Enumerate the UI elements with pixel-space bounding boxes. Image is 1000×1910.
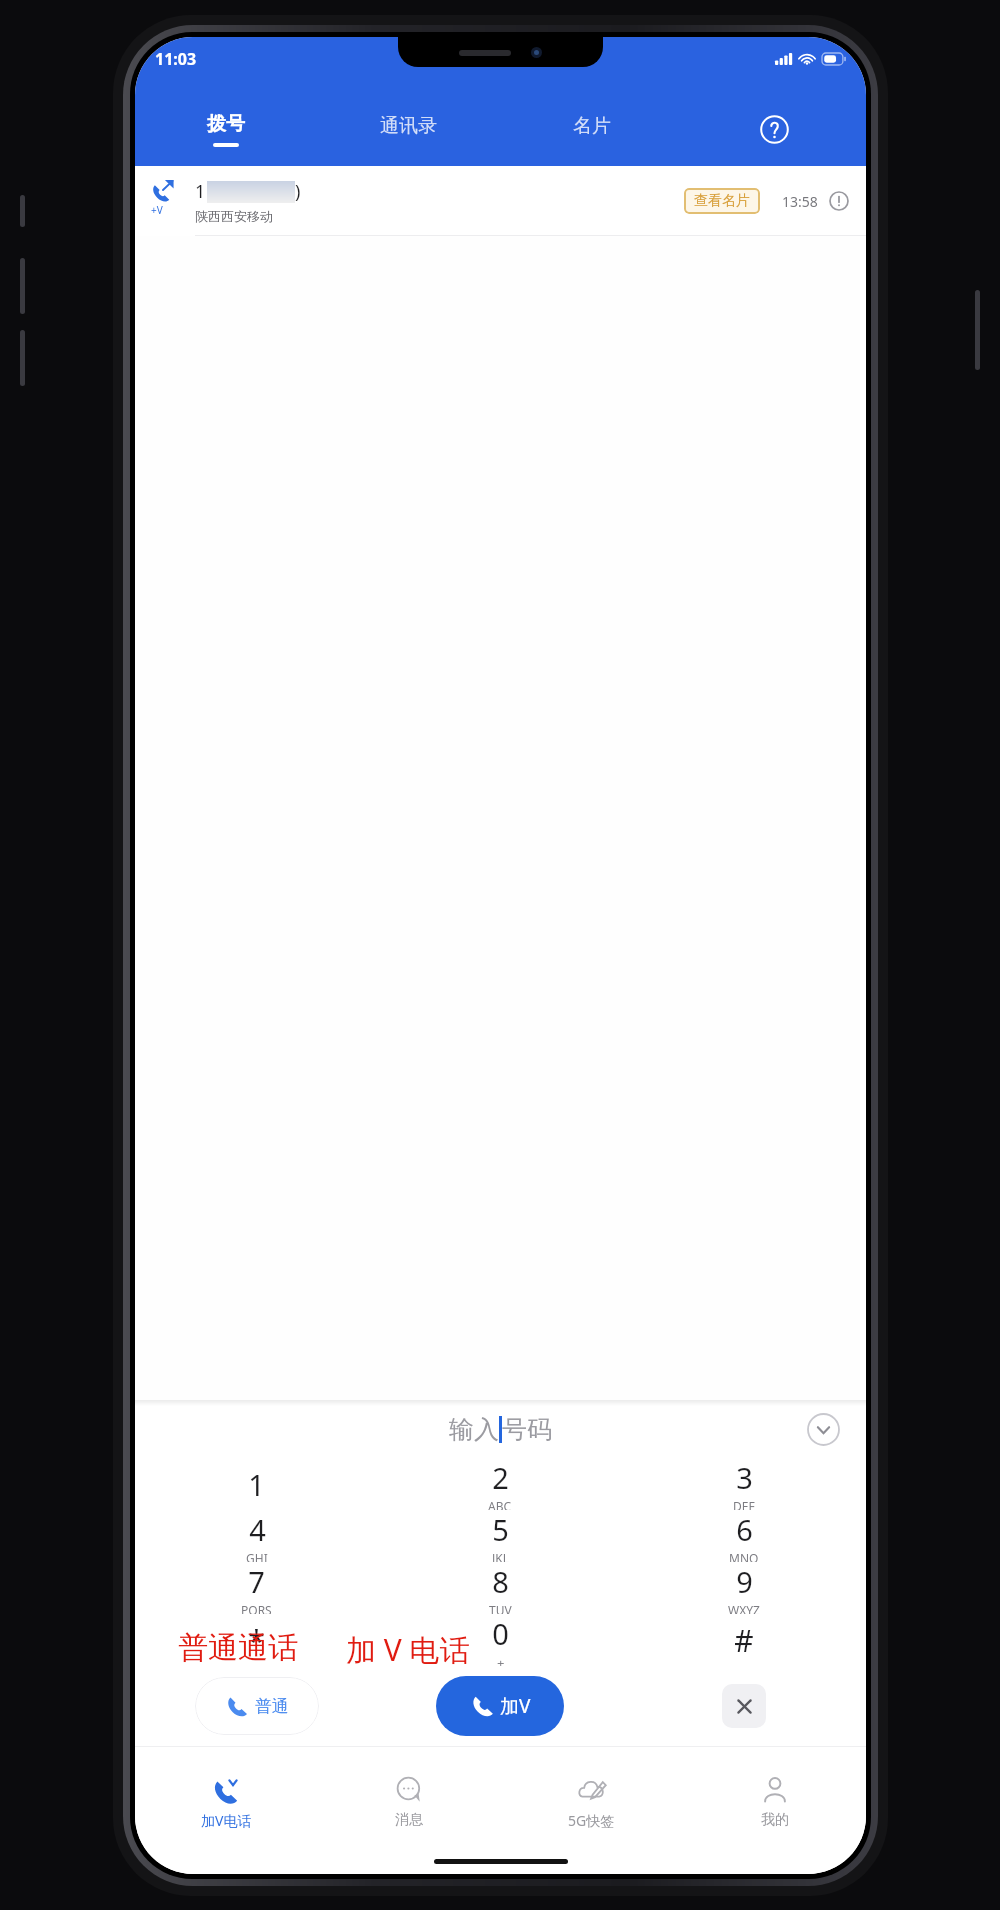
staticText: ABC	[488, 1498, 512, 1510]
button[interactable]: 拨号	[135, 92, 317, 166]
button[interactable]: 加V电话	[135, 1756, 317, 1848]
button[interactable]: #	[622, 1614, 866, 1666]
staticText: 名片	[573, 114, 611, 138]
staticText: MNO	[729, 1550, 759, 1562]
staticText: 通讯录	[380, 114, 437, 138]
button[interactable]: 1	[135, 1458, 378, 1510]
staticText: +V	[151, 203, 163, 217]
button[interactable]: 消息	[317, 1756, 500, 1848]
staticText: 6	[736, 1510, 753, 1549]
staticText: 9	[736, 1562, 753, 1601]
staticText: 普通通话	[178, 1629, 298, 1667]
staticText: +	[497, 1654, 505, 1666]
staticText: 11:03	[155, 48, 197, 70]
staticText: 号码	[502, 1414, 552, 1445]
staticText: WXYZ	[728, 1602, 760, 1614]
staticText: 陕西西安移动	[195, 208, 273, 224]
button[interactable]: 5	[378, 1510, 622, 1562]
button[interactable]: 7	[135, 1562, 378, 1614]
staticText: 输入	[449, 1414, 499, 1445]
staticText: DEF	[733, 1498, 755, 1510]
staticText: 8	[492, 1562, 509, 1601]
button[interactable]: 6	[622, 1510, 866, 1562]
button[interactable]: 0	[378, 1614, 622, 1666]
button[interactable]: 我的	[683, 1756, 866, 1848]
staticText: 7	[248, 1562, 265, 1601]
button[interactable]: 8	[378, 1562, 622, 1614]
staticText: GHI	[246, 1550, 268, 1562]
button[interactable]: +V	[135, 166, 866, 236]
button[interactable]: 详情	[828, 190, 850, 212]
staticText: 4	[249, 1510, 266, 1549]
button[interactable]: 加V	[436, 1676, 564, 1736]
staticText: 加 V 电话	[346, 1629, 470, 1670]
button[interactable]: 收起键盘	[807, 1413, 840, 1446]
button[interactable]: 帮助	[683, 92, 866, 166]
button[interactable]: 删除	[722, 1684, 766, 1728]
button[interactable]: 3	[622, 1458, 866, 1510]
button[interactable]: *	[135, 1614, 378, 1666]
button[interactable]: 4	[135, 1510, 378, 1562]
staticText: 普通	[255, 1696, 289, 1717]
staticText: 加V	[500, 1693, 531, 1719]
staticText: 查看名片	[694, 192, 750, 210]
staticText: 3	[736, 1458, 753, 1497]
button[interactable]: 普通	[195, 1677, 319, 1735]
button[interactable]: 查看名片	[684, 188, 760, 214]
staticText: 5G快签	[568, 1811, 615, 1830]
staticText: 2	[492, 1458, 509, 1497]
staticText: 加V电话	[201, 1811, 252, 1830]
staticText: TUV	[489, 1602, 512, 1614]
button[interactable]: 5G快签	[500, 1756, 683, 1848]
staticText: 拨号	[207, 112, 245, 136]
staticText: #	[734, 1620, 754, 1661]
staticText: 0	[492, 1614, 509, 1653]
button[interactable]: 9	[622, 1562, 866, 1614]
button[interactable]: 通讯录	[317, 92, 500, 166]
staticText: 1	[248, 1465, 265, 1504]
staticText: )	[295, 179, 301, 204]
button[interactable]: 名片	[500, 92, 683, 166]
staticText: JKL	[492, 1550, 509, 1562]
staticText: 13:58	[782, 192, 818, 211]
staticText: 消息	[395, 1811, 423, 1829]
button[interactable]: 2	[378, 1458, 622, 1510]
staticText: 1	[195, 179, 206, 204]
staticText: 5	[492, 1510, 509, 1549]
staticText: PQRS	[241, 1602, 272, 1614]
staticText: *	[248, 1620, 265, 1661]
staticText: 我的	[761, 1811, 789, 1829]
